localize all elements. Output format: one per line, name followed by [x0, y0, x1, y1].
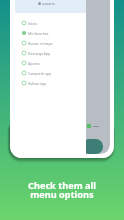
button[interactable]: Descarga App	[15, 48, 86, 58]
button[interactable]: Valorar app	[15, 78, 86, 88]
button[interactable]: Compartir app	[15, 68, 86, 78]
button[interactable]: Add	[86, 139, 103, 154]
staticText: Compartir app	[28, 71, 52, 76]
staticText: Valorar app	[28, 81, 47, 86]
button[interactable]: Buscar el mapa	[15, 38, 86, 48]
button[interactable]: Ajustes	[15, 58, 86, 68]
staticText: usuario	[42, 1, 55, 6]
staticText: Ajustes	[28, 61, 40, 66]
staticText: Buscar el mapa	[28, 41, 53, 46]
button[interactable]: Inicio	[15, 18, 86, 28]
staticText: Check them all menu options	[0, 179, 124, 201]
staticText: Mis favoritos	[28, 31, 49, 36]
button[interactable]: Mis favoritos	[15, 28, 86, 38]
staticText: Inicio	[28, 21, 37, 26]
staticText: Descarga App	[28, 51, 51, 56]
